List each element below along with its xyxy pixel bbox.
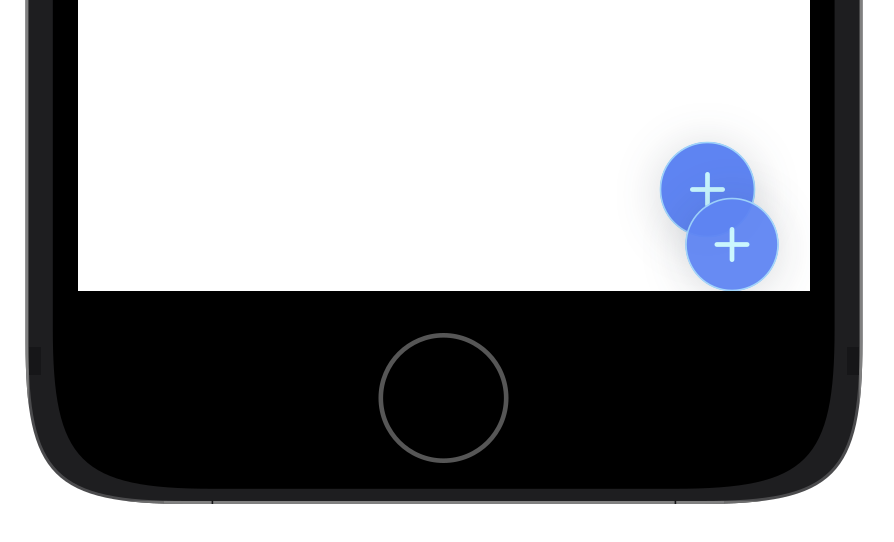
button[interactable]: Compose	[685, 198, 778, 291]
button[interactable]: Add item	[660, 142, 755, 237]
